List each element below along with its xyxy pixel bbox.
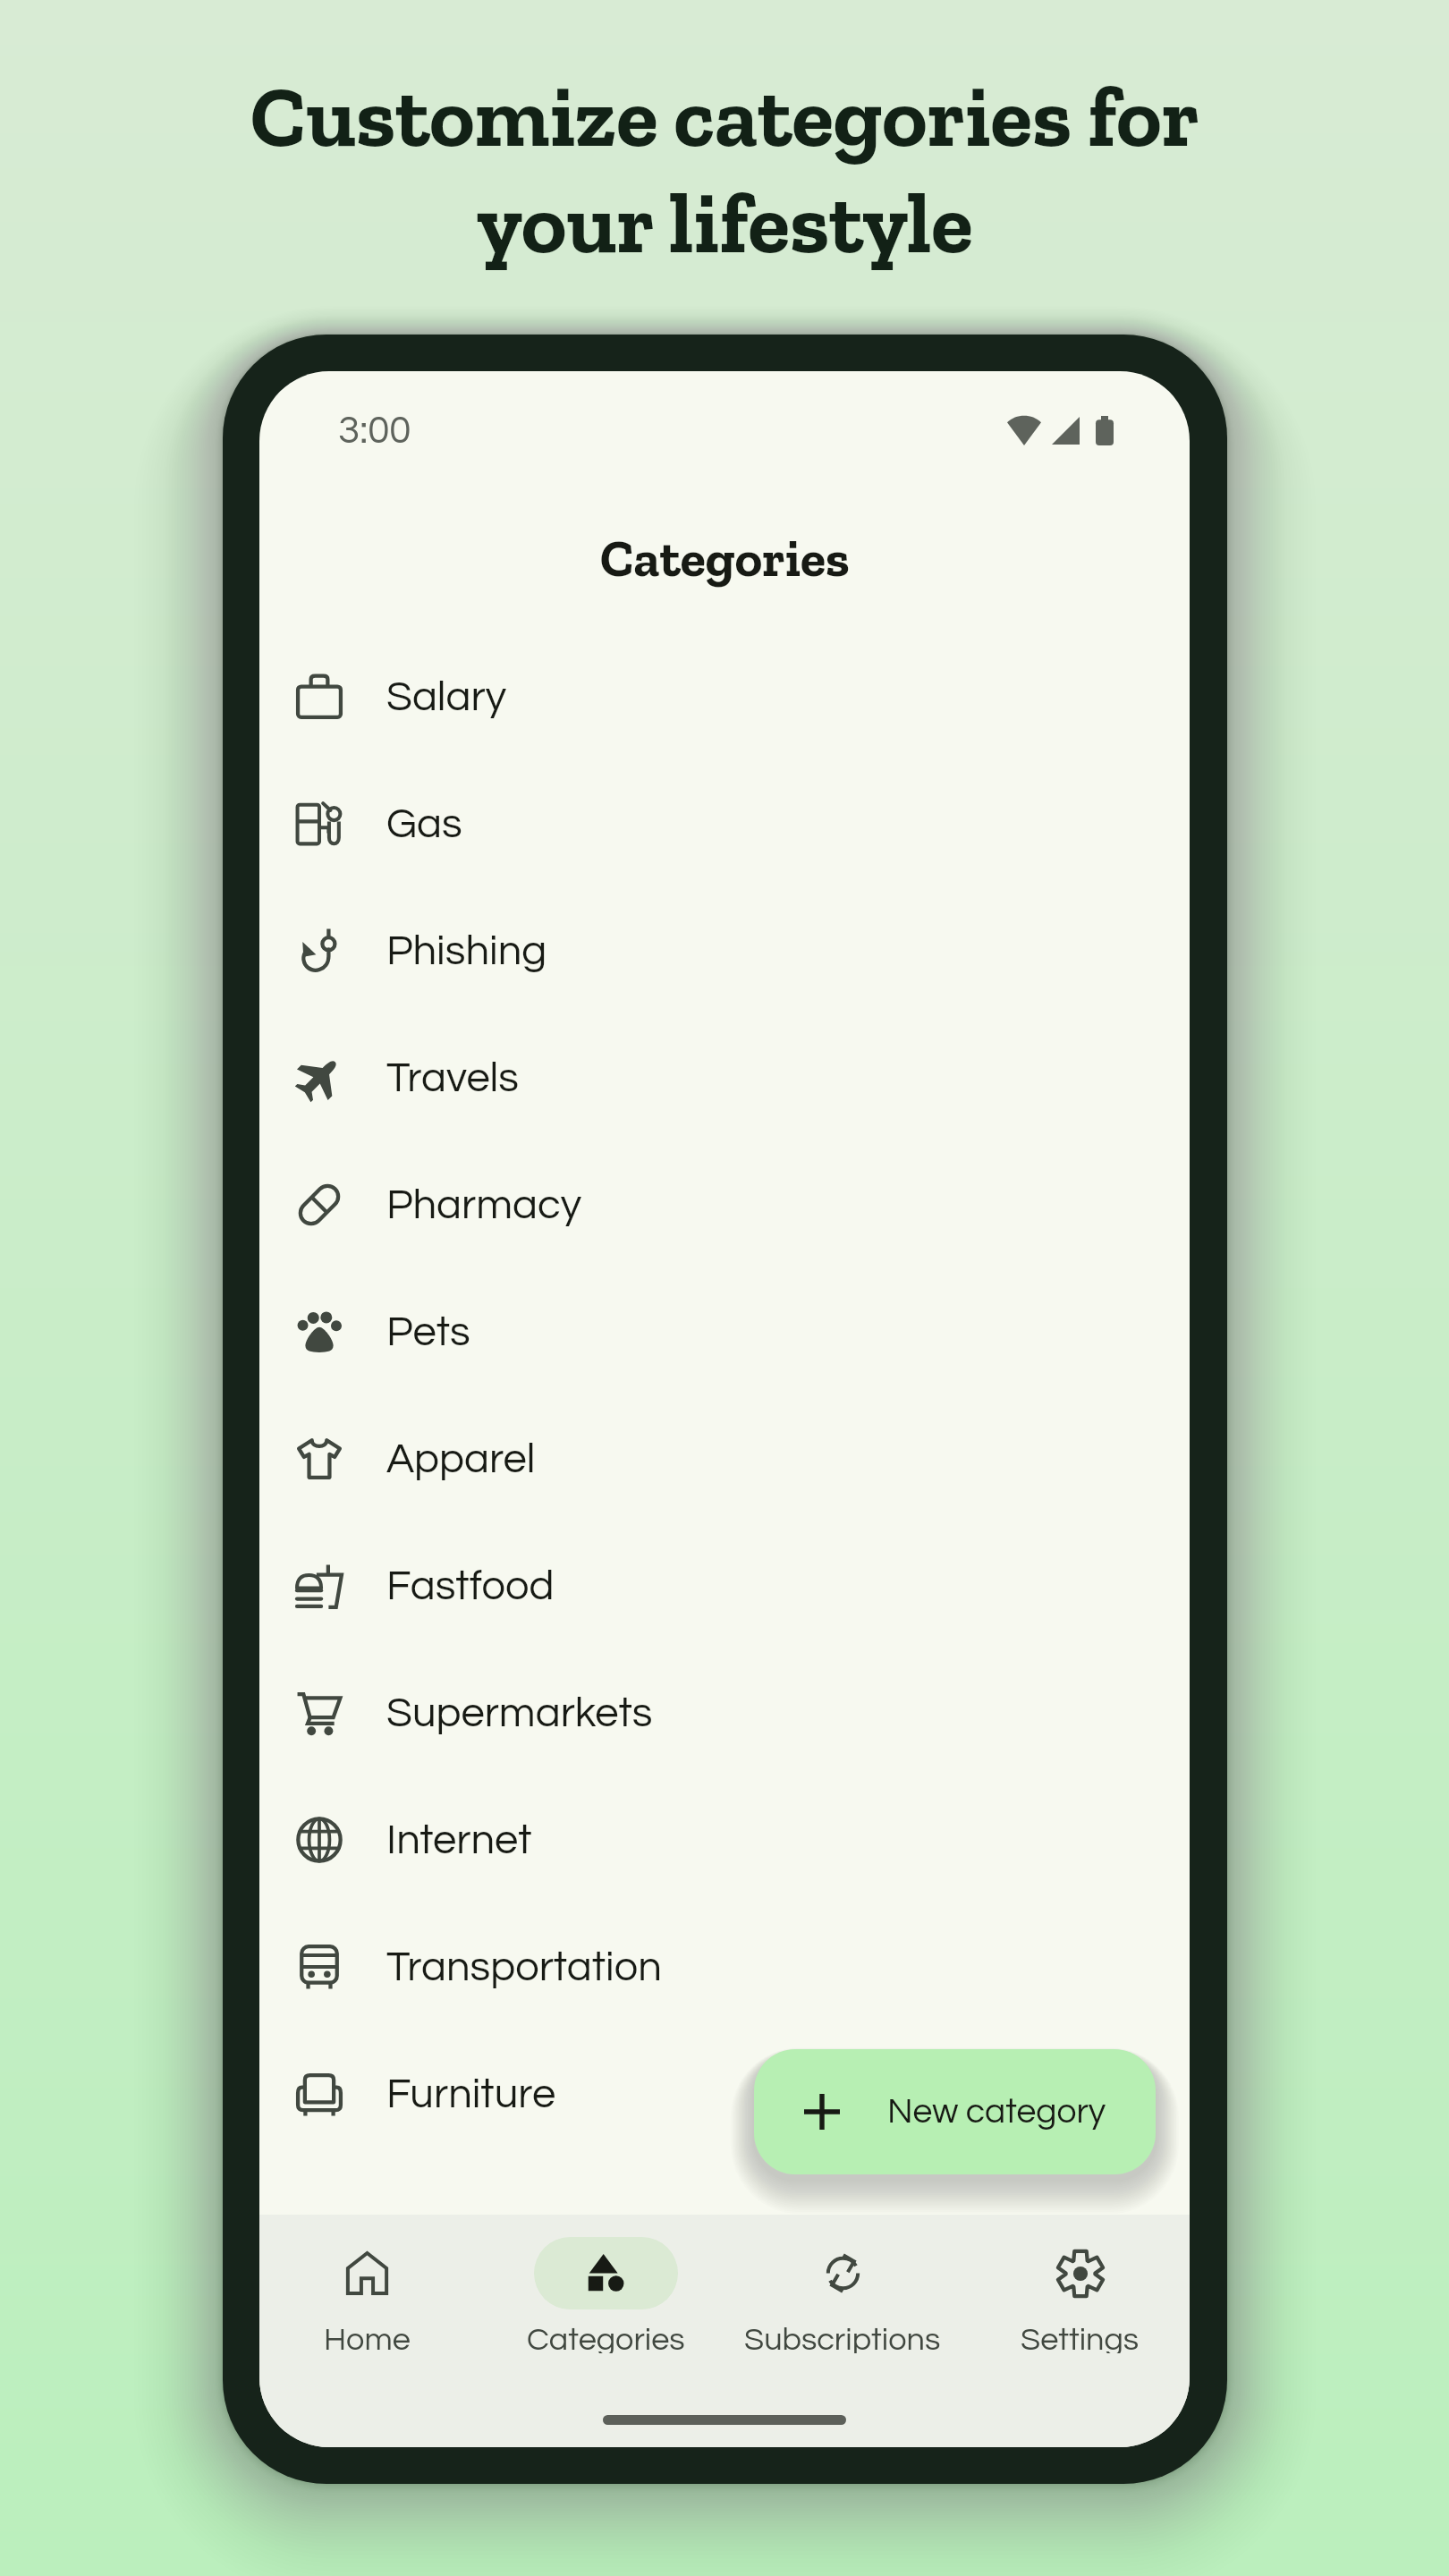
staticText: Home: [324, 2323, 411, 2353]
staticText: Fastfood: [386, 1564, 555, 1607]
staticText: Subscriptions: [744, 2323, 941, 2353]
button[interactable]: Subscriptions: [726, 2237, 959, 2353]
staticText: Pharmacy: [386, 1183, 581, 1226]
button[interactable]: Travels: [259, 1014, 1190, 1141]
button[interactable]: Home: [259, 2237, 483, 2353]
button[interactable]: Supermarkets: [259, 1649, 1190, 1776]
button[interactable]: Categories: [489, 2237, 722, 2353]
other: Home: [346, 2252, 388, 2294]
other: Subscriptions: [822, 2252, 864, 2294]
button[interactable]: Fastfood: [259, 1522, 1190, 1649]
staticText: Furniture: [386, 2072, 556, 2115]
button[interactable]: Pharmacy: [259, 1141, 1190, 1268]
button[interactable]: Settings: [963, 2237, 1190, 2353]
button[interactable]: Phishing: [259, 887, 1190, 1014]
button[interactable]: New category: [754, 2049, 1156, 2174]
staticText: Salary: [386, 675, 507, 718]
staticText: Travels: [386, 1056, 519, 1099]
staticText: Settings: [1021, 2323, 1140, 2353]
staticText: Transportation: [386, 1945, 662, 1988]
button[interactable]: Salary: [259, 633, 1190, 760]
button[interactable]: Internet: [259, 1776, 1190, 1903]
staticText: Apparel: [386, 1437, 536, 1480]
staticText: Phishing: [386, 929, 547, 972]
staticText: Internet: [386, 1818, 532, 1861]
button[interactable]: Gas: [259, 760, 1190, 887]
other: Settings: [1057, 2250, 1104, 2297]
button[interactable]: Pets: [259, 1268, 1190, 1395]
staticText: 3:00: [338, 411, 411, 451]
staticText: Customize categories for your lifestyle: [250, 64, 1199, 274]
staticText: New category: [887, 2094, 1106, 2130]
staticText: Gas: [386, 802, 462, 845]
staticText: Categories: [600, 527, 850, 589]
staticText: Categories: [527, 2323, 685, 2353]
staticText: Pets: [386, 1310, 470, 1353]
staticText: Supermarkets: [386, 1691, 653, 1734]
button[interactable]: Apparel: [259, 1395, 1190, 1522]
other: Categories: [585, 2252, 627, 2294]
button[interactable]: Transportation: [259, 1903, 1190, 2030]
button[interactable]: Furniture: [259, 2030, 1190, 2157]
